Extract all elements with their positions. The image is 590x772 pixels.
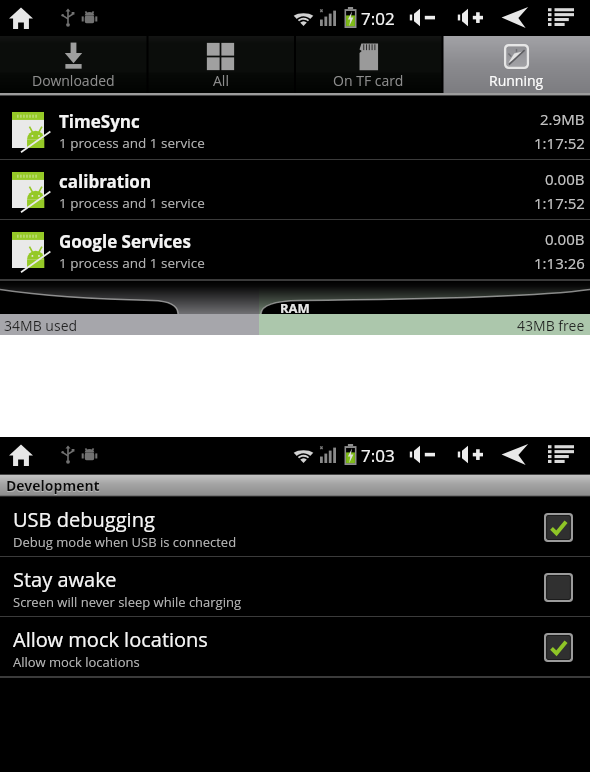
button[interactable]: Running	[442, 36, 590, 93]
button[interactable]: Back	[501, 7, 529, 28]
button[interactable]: USB debugging	[0, 497, 590, 557]
button[interactable]: Recent apps	[548, 444, 574, 464]
staticText: RAM	[280, 299, 310, 317]
staticText: Development	[6, 476, 100, 495]
button[interactable]: Google Services	[0, 220, 590, 280]
button[interactable]: All	[147, 36, 294, 93]
staticText: Allow mock locations	[13, 653, 140, 671]
staticText: On TF card	[333, 71, 404, 90]
staticText: Screen will never sleep while charging	[13, 593, 242, 611]
staticText: 1:17:52	[534, 193, 585, 213]
staticText: Running	[489, 71, 544, 90]
staticText: 1:13:26	[534, 253, 585, 273]
staticText: 1:17:52	[534, 133, 585, 153]
button[interactable]: Downloaded	[0, 36, 147, 93]
button[interactable]: Allow mock locations	[0, 617, 590, 677]
staticText: 0.00B	[545, 169, 585, 189]
button[interactable]: On TF card	[294, 36, 442, 93]
staticText: Allow mock locations	[13, 626, 208, 653]
button[interactable]: Back	[501, 444, 529, 465]
button[interactable]: calibration	[0, 160, 590, 220]
staticText: Google Services	[59, 230, 191, 253]
staticText: calibration	[59, 170, 152, 193]
staticText: USB debugging	[13, 506, 155, 533]
staticText: Debug mode when USB is connected	[13, 533, 237, 551]
staticText: All	[213, 71, 229, 90]
button[interactable]: Volume up	[456, 7, 486, 28]
button[interactable]: Volume down	[408, 7, 438, 28]
staticText: Stay awake	[13, 566, 117, 593]
button[interactable]: Recent apps	[548, 7, 574, 27]
button[interactable]: Home	[9, 444, 33, 466]
staticText: Downloaded	[32, 71, 115, 90]
staticText: 43MB free	[517, 316, 585, 335]
staticText: 1 process and 1 service	[59, 194, 205, 212]
staticText: 1 process and 1 service	[59, 254, 205, 272]
staticText: 7:03	[361, 444, 395, 467]
button[interactable]: Home	[9, 7, 33, 29]
staticText: 0.00B	[545, 229, 585, 249]
staticText: TimeSync	[59, 110, 140, 133]
staticText: Development	[6, 477, 100, 496]
staticText: 2.9MB	[540, 109, 585, 129]
staticText: 1 process and 1 service	[59, 134, 205, 152]
button[interactable]: TimeSync	[0, 100, 590, 160]
button[interactable]: Stay awake	[0, 557, 590, 617]
staticText: 7:02	[361, 7, 395, 30]
button[interactable]: Volume down	[408, 444, 438, 465]
button[interactable]: Volume up	[456, 444, 486, 465]
staticText: 34MB used	[4, 316, 78, 335]
